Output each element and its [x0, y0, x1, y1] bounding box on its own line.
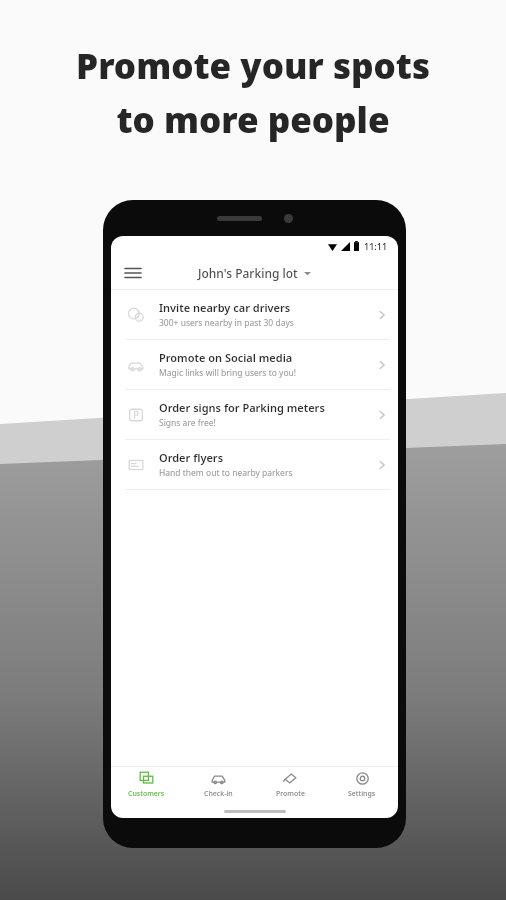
staticText: John's Parking lot: [198, 265, 298, 281]
button[interactable]: Check-in: [182, 766, 254, 804]
staticText: Promote your spots: [76, 42, 430, 90]
staticText: Order flyers: [159, 450, 224, 465]
staticText: Invite nearby car drivers: [159, 300, 291, 315]
staticText: Customers: [128, 789, 165, 799]
staticText: Magic links will bring users to you!: [159, 367, 297, 379]
staticText: Check-in: [204, 789, 233, 799]
staticText: Promote on Social media: [159, 350, 293, 365]
button[interactable]: Order signs for Parking meters: [111, 390, 398, 439]
button[interactable]: Order flyers: [111, 440, 398, 489]
button[interactable]: Customers: [111, 766, 182, 804]
staticText: to more people: [116, 96, 390, 144]
staticText: Order signs for Parking meters: [159, 400, 325, 415]
button[interactable]: Promote on Social media: [111, 340, 398, 389]
button[interactable]: Promote: [254, 766, 326, 804]
staticText: 300+ users nearby in past 30 days: [159, 317, 294, 329]
button[interactable]: Menu: [117, 257, 149, 289]
button[interactable]: Settings: [326, 766, 398, 804]
staticText: Promote: [276, 789, 305, 799]
staticText: Settings: [348, 789, 376, 799]
button[interactable]: John's Parking lot: [198, 265, 311, 281]
staticText: Hand them out to nearby parkers: [159, 467, 293, 479]
staticText: 11:11: [364, 240, 388, 252]
staticText: Signs are free!: [159, 417, 216, 429]
button[interactable]: Invite nearby car drivers: [111, 290, 398, 339]
